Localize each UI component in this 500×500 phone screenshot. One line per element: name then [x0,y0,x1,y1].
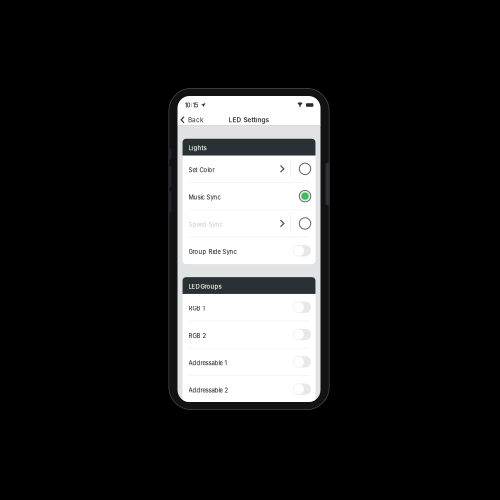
staticText: Addressable 1 [188,359,226,367]
staticText: Set Color [188,166,214,174]
button[interactable]: RGB 1 [182,294,315,320]
button[interactable]: Addressable 1 [182,349,315,375]
button[interactable]: Speed Sync [182,210,315,237]
staticText: Group Ride Sync [188,248,236,255]
staticText: Speed Sync [188,221,222,228]
staticText: LED Settings [228,116,269,124]
staticText: Addressable 2 [188,387,228,394]
button[interactable]: RGB 2 [182,321,315,348]
button[interactable]: Set Color [182,155,315,182]
staticText: 10:15 [185,102,199,109]
staticText: Music Sync [188,194,220,201]
staticText: RGB 2 [188,332,206,339]
staticText: Back [188,116,204,124]
button[interactable]: Music Sync [182,183,315,209]
button[interactable]: Back [177,114,208,126]
staticText: LED Groups [188,283,221,290]
staticText: Lights [188,145,206,152]
staticText: RGB 1 [188,305,204,312]
button[interactable]: Group Ride Sync [182,237,315,264]
button[interactable]: Addressable 2 [182,376,315,402]
